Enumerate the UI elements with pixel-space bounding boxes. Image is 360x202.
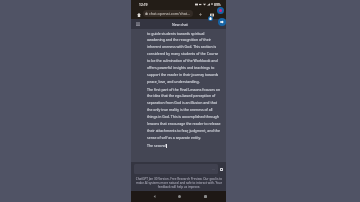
button[interactable]: Menu <box>134 20 142 28</box>
button[interactable]: Recents <box>201 192 210 201</box>
staticText: to guide students towards spiritual awak… <box>147 31 221 84</box>
button[interactable]: Floating forward button <box>218 18 226 26</box>
button[interactable]: Floating home button <box>208 16 213 21</box>
staticText: The first part of the Final Lessons focu… <box>147 87 221 140</box>
button[interactable]: Tabs <box>208 11 215 18</box>
button[interactable]: Profile <box>217 7 224 14</box>
staticText: 89% <box>214 2 221 6</box>
staticText: New chat <box>172 22 188 27</box>
button[interactable]: Stop generating <box>219 167 224 172</box>
staticText: 12:19 <box>139 2 148 6</box>
button[interactable]: chat.openai.com/chat... <box>143 10 193 17</box>
staticText: ChatGPT Jan 30 Version. Free Research Pr… <box>133 177 225 189</box>
staticText: chat.openai.com/chat... <box>149 11 191 16</box>
button[interactable]: Home <box>175 192 184 201</box>
button[interactable]: Back <box>150 192 159 201</box>
staticText: ... <box>212 166 215 171</box>
staticText: The second <box>147 143 166 148</box>
button[interactable]: New tab <box>197 11 204 18</box>
button[interactable]: Home <box>135 11 142 18</box>
